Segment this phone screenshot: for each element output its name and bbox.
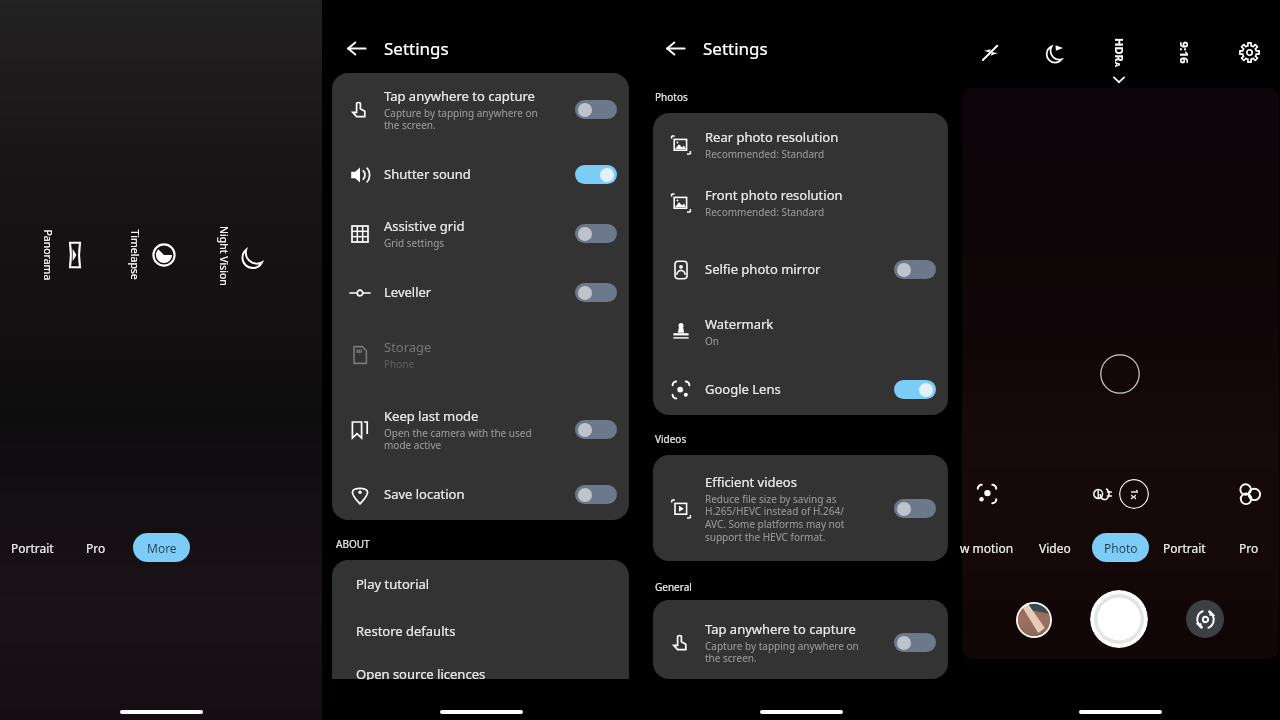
button[interactable]: Keep last mode — [332, 399, 629, 459]
staticText: Storage — [384, 338, 432, 356]
button[interactable]: Aspect ratio 9:16 — [1164, 32, 1204, 72]
button[interactable]: Macro — [1093, 484, 1113, 504]
staticText: Front photo resolution — [705, 186, 843, 204]
button[interactable]: Restore defaults — [332, 608, 629, 654]
button[interactable]: Shutter sound — [332, 144, 629, 204]
staticText: Settings — [384, 37, 449, 60]
staticText: Panorama — [40, 229, 54, 280]
button[interactable]: w motion — [947, 533, 1027, 562]
staticText: On — [705, 334, 719, 348]
staticText: Keep last mode — [384, 407, 479, 425]
button[interactable]: Settings — [1232, 35, 1266, 69]
staticText: Video — [1039, 540, 1071, 556]
button[interactable]: More — [133, 533, 190, 562]
staticText: Save location — [384, 485, 465, 503]
staticText: Leveller — [384, 283, 432, 301]
button[interactable]: Disabled — [575, 100, 617, 119]
button[interactable]: Expand — [1111, 72, 1127, 88]
button[interactable]: Portrait — [1144, 533, 1224, 562]
staticText: Google Lens — [705, 380, 781, 398]
button[interactable]: Back — [659, 32, 691, 64]
staticText: Tap anywhere to capture — [384, 87, 535, 105]
button[interactable]: Disabled — [894, 260, 936, 279]
staticText: 9:16 — [1176, 41, 1191, 63]
button[interactable]: Selfie photo mirror — [653, 240, 948, 298]
staticText: Selfie photo mirror — [705, 260, 821, 278]
button[interactable]: Leveller — [332, 262, 629, 322]
staticText: Videos — [655, 432, 687, 446]
button[interactable]: Tap anywhere to capture — [653, 613, 948, 671]
button[interactable]: Panorama — [7, 215, 87, 295]
staticText: Grid settings — [384, 236, 445, 250]
button[interactable]: Tap anywhere to capture — [332, 79, 629, 139]
staticText: Shutter sound — [384, 165, 471, 183]
button[interactable]: Disabled — [575, 224, 617, 243]
button[interactable]: Night Vision — [184, 216, 264, 296]
button[interactable]: Back — [340, 32, 372, 64]
staticText: Watermark — [705, 315, 774, 333]
staticText: Portrait — [11, 540, 54, 556]
button[interactable]: Portrait — [0, 533, 72, 563]
staticText: w motion — [960, 540, 1014, 556]
staticText: Night Vision — [217, 226, 231, 286]
button[interactable]: HDR auto — [1099, 32, 1139, 72]
button[interactable]: Switch camera — [1186, 600, 1224, 638]
staticText: Pro — [1239, 540, 1259, 556]
staticText: Recommended: Standard — [705, 147, 825, 161]
staticText: Settings — [703, 37, 768, 60]
staticText: ABOUT — [336, 537, 370, 551]
staticText: Open the camera with the used mode activ… — [384, 426, 532, 452]
staticText: Tap anywhere to capture — [705, 620, 856, 638]
staticText: HDR — [1112, 38, 1127, 62]
staticText: More — [147, 540, 177, 556]
button[interactable]: Open source licences — [332, 662, 629, 680]
button[interactable]: Disabled — [575, 485, 617, 504]
staticText: Timelapse — [127, 229, 141, 280]
button[interactable]: Video — [1015, 533, 1095, 562]
staticText: Restore defaults — [356, 622, 456, 640]
staticText: 1x — [1128, 489, 1141, 500]
staticText: Assistive grid — [384, 217, 465, 235]
button[interactable]: Assistive grid — [332, 203, 629, 263]
button[interactable]: Pro — [1209, 533, 1280, 562]
button[interactable]: Disabled — [894, 499, 936, 518]
button[interactable]: Play tutorial — [332, 561, 629, 607]
button[interactable]: Disabled — [575, 420, 617, 439]
staticText: Photo — [1104, 540, 1138, 556]
button[interactable]: Flash off — [973, 35, 1007, 69]
button[interactable]: Timelapse — [94, 215, 174, 295]
staticText: General — [655, 580, 692, 594]
staticText: Recommended: Standard — [705, 205, 825, 219]
button[interactable]: Storage — [332, 324, 629, 384]
staticText: Phone — [384, 357, 415, 371]
button[interactable]: 1x — [1119, 479, 1149, 509]
staticText: A — [1112, 62, 1122, 67]
button[interactable]: Watermark — [653, 302, 948, 360]
staticText: Capture by tapping anywhere on the scree… — [705, 639, 859, 665]
button[interactable]: Enabled — [894, 380, 936, 399]
staticText: Efficient videos — [705, 473, 797, 491]
button[interactable]: Enabled — [575, 165, 617, 184]
button[interactable]: Pro — [56, 533, 136, 563]
staticText: Pro — [86, 540, 106, 556]
button[interactable]: Shutter — [1090, 590, 1148, 648]
staticText: Rear photo resolution — [705, 128, 839, 146]
button[interactable]: Disabled — [894, 633, 936, 652]
staticText: Play tutorial — [356, 575, 430, 593]
button[interactable]: Google Lens — [653, 360, 948, 418]
staticText: Capture by tapping anywhere on the scree… — [384, 106, 538, 132]
button[interactable]: Efficient videos — [653, 458, 948, 558]
staticText: Photos — [655, 90, 688, 104]
button[interactable]: Lens selection — [976, 483, 998, 505]
button[interactable]: Photo — [1092, 533, 1149, 562]
button[interactable]: Bokeh — [1239, 483, 1261, 505]
button[interactable]: Gallery — [1016, 602, 1052, 638]
button[interactable]: Disabled — [575, 283, 617, 302]
button[interactable]: Rear photo resolution — [653, 115, 948, 173]
button[interactable]: Front photo resolution — [653, 173, 948, 231]
staticText: Open source licences — [356, 665, 486, 680]
button[interactable]: Night mode — [1038, 35, 1072, 69]
button[interactable]: Save location — [332, 464, 629, 524]
staticText: Portrait — [1163, 540, 1206, 556]
staticText: Reduce file size by saving as H.265/HEVC… — [705, 492, 845, 544]
